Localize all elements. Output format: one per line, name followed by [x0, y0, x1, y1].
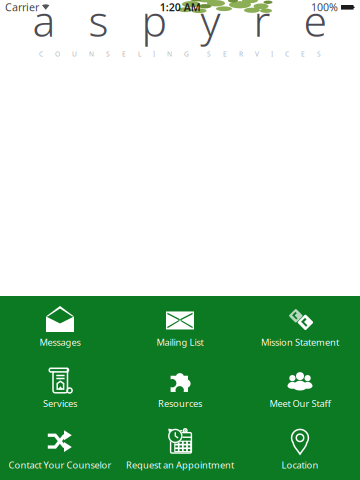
staticText: Mission Statement	[261, 336, 339, 348]
button[interactable]: Services	[0, 357, 120, 419]
button[interactable]: Messages	[0, 296, 120, 357]
staticText: 1:20 AM	[160, 0, 201, 14]
staticText: Services	[43, 397, 77, 410]
staticText: Messages	[39, 336, 80, 348]
button[interactable]: Request an Appointment	[120, 419, 240, 480]
staticText: 100%	[311, 0, 338, 14]
staticText: a s p y r e	[32, 0, 327, 48]
button[interactable]: Mailing List	[120, 296, 240, 357]
staticText: Mailing List	[156, 336, 203, 348]
button[interactable]: Contact Your Counselor	[0, 419, 120, 480]
staticText: Carrier	[5, 0, 39, 14]
button[interactable]: Resources	[120, 357, 240, 419]
staticText: Meet Our Staff	[269, 397, 330, 410]
staticText: C O U N S E L I N G S E R V I C E S	[39, 49, 321, 58]
staticText: Contact Your Counselor	[8, 459, 111, 471]
staticText: Resources	[158, 397, 202, 410]
button[interactable]: Meet Our Staff	[240, 357, 360, 419]
button[interactable]: Mission Statement	[240, 296, 360, 357]
staticText: Request an Appointment	[126, 459, 234, 471]
button[interactable]: Location	[240, 419, 360, 480]
staticText: Location	[281, 459, 318, 471]
